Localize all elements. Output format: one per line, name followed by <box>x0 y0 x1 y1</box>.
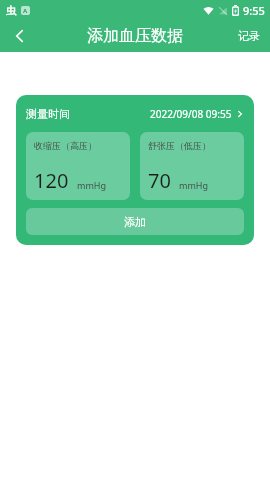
button[interactable]: 收缩压（高压） <box>26 132 130 200</box>
staticText: A <box>23 7 28 15</box>
staticText: 记录 <box>238 29 260 43</box>
staticText: mmHg <box>77 179 107 191</box>
staticText: 舒张压（低压） <box>148 140 211 151</box>
button[interactable]: Back <box>0 20 40 52</box>
staticText: 虫 <box>6 4 16 17</box>
staticText: 2022/09/08 09:55 <box>150 107 232 121</box>
staticText: 添加血压数据 <box>87 26 183 46</box>
staticText: 70 <box>148 167 171 194</box>
staticText: 收缩压（高压） <box>34 140 97 151</box>
staticText: 120 <box>34 167 69 194</box>
staticText: 添加 <box>124 215 146 229</box>
staticText: 9:55 <box>243 3 265 18</box>
button[interactable]: 添加 <box>26 208 244 235</box>
staticText: mmHg <box>179 179 209 191</box>
staticText: 测量时间 <box>26 107 70 121</box>
button[interactable]: 舒张压（低压） <box>140 132 244 200</box>
button[interactable]: 测量时间 <box>26 105 244 123</box>
button[interactable]: 记录 <box>228 20 270 52</box>
